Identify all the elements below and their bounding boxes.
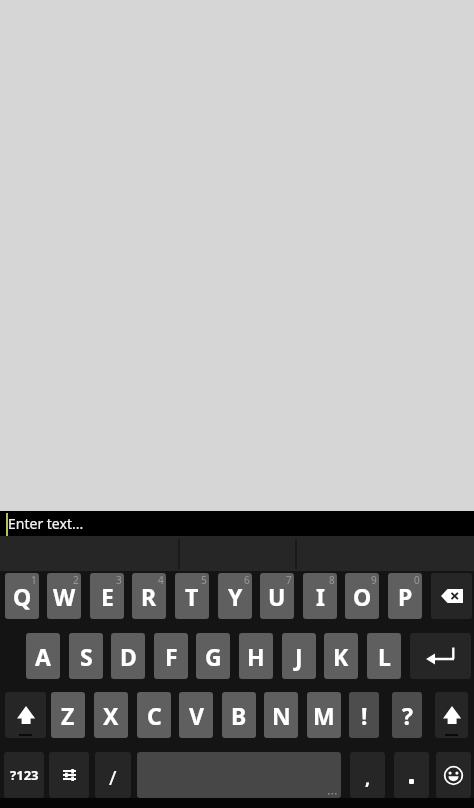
button[interactable]: , [350,752,385,798]
button[interactable]: Z [51,692,85,738]
button[interactable] [431,573,472,619]
staticText: 1 [31,573,37,587]
staticText: ?123 [10,766,39,784]
button[interactable]: E [90,573,124,619]
button[interactable]: Q [5,573,39,619]
staticText: A [35,641,51,672]
staticText: , [365,766,371,791]
staticText: F [165,641,178,672]
staticText: 2 [73,573,79,587]
button[interactable]: M [307,692,341,738]
button[interactable]: R [132,573,166,619]
staticText: D [120,641,137,672]
staticText: Z [61,700,75,731]
button[interactable]: J [282,633,316,679]
button[interactable]: F [154,633,188,679]
staticText: 6 [244,573,250,587]
button[interactable]: D [111,633,145,679]
button[interactable]: G [196,633,230,679]
staticText: 9 [371,573,377,587]
staticText: J [295,641,303,672]
staticText: L [378,641,391,672]
staticText: Enter text... [8,514,84,533]
button[interactable] [435,692,468,738]
button[interactable]: K [324,633,358,679]
button[interactable]: ! [349,692,379,738]
staticText: I [316,581,325,612]
button[interactable] [49,752,89,798]
button[interactable]: V [179,692,213,738]
button[interactable]: S [69,633,103,679]
button[interactable]: X [94,692,128,738]
button[interactable]: C [137,692,171,738]
button[interactable]: / [95,752,131,798]
button[interactable]: ? [392,692,422,738]
button[interactable] [5,692,46,738]
staticText: V [189,700,204,731]
button[interactable]: L [367,633,401,679]
button[interactable]: T [175,573,209,619]
staticText: / [109,764,117,791]
staticText: Y [228,581,243,612]
button[interactable]: ?123 [4,752,44,798]
staticText: H [247,641,265,672]
staticText: 5 [201,573,207,587]
button[interactable] [410,633,471,679]
staticText: K [333,641,349,672]
staticText: ! [361,700,368,731]
staticText: 7 [286,573,292,587]
button[interactable]: Enter text... [0,511,474,536]
button[interactable]: H [239,633,273,679]
staticText: B [231,700,247,731]
staticText: S [80,641,93,672]
button[interactable]: W [47,573,81,619]
staticText: T [185,581,199,612]
staticText: G [205,641,222,672]
button[interactable] [436,752,471,798]
staticText: 8 [329,573,335,587]
staticText: 4 [158,573,164,587]
staticText: W [53,581,76,612]
staticText: ? [402,700,413,731]
staticText: E [101,581,114,612]
staticText: U [268,581,286,612]
button[interactable]: I [303,573,337,619]
staticText: M [313,700,335,731]
button[interactable] [394,752,429,798]
staticText: Q [13,581,32,612]
button[interactable]: P [388,573,422,619]
staticText: 0 [414,573,420,587]
staticText: 3 [116,573,122,587]
button[interactable]: N [264,692,298,738]
staticText: N [272,700,291,731]
button[interactable]: O [345,573,379,619]
button[interactable]: B [222,692,256,738]
staticText: R [141,581,157,612]
button[interactable]: A [26,633,60,679]
staticText: O [353,581,372,612]
button[interactable]: U [260,573,294,619]
staticText: P [398,581,413,612]
staticText: X [103,700,119,731]
button[interactable]: Y [218,573,252,619]
staticText: C [147,700,162,731]
